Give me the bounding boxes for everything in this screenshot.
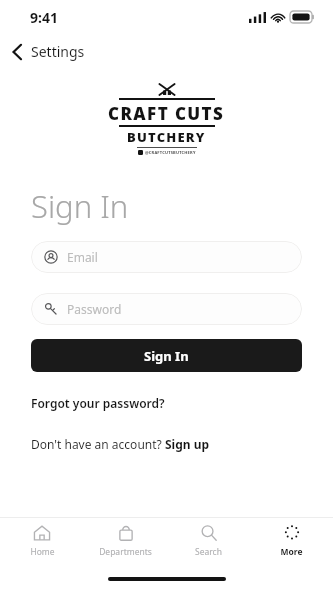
button[interactable]: Back (0, 34, 101, 69)
staticText: Sign In (31, 185, 129, 227)
other: Back (12, 43, 23, 61)
staticText: Sign In (144, 347, 189, 365)
button[interactable]: Password (31, 293, 302, 325)
staticText: 9:41 (30, 8, 58, 27)
staticText: BUTCHERY (127, 128, 206, 146)
button[interactable]: Search (167, 518, 250, 566)
button[interactable]: Departments (84, 518, 167, 566)
staticText: @CRAFTCUTSBUTCHERY (145, 150, 196, 155)
staticText: Departments (99, 546, 152, 558)
button[interactable]: Forgot your password? (31, 395, 165, 411)
button[interactable]: Home (0, 518, 84, 566)
staticText: Email (67, 249, 98, 265)
button[interactable]: Sign In (31, 339, 302, 372)
staticText: Home (30, 546, 55, 558)
button[interactable]: Sign up (165, 436, 210, 452)
staticText: Don't have an account? (31, 436, 165, 452)
staticText: Search (195, 546, 222, 558)
staticText: Settings (31, 42, 85, 61)
staticText: More (280, 546, 303, 558)
staticText: CRAFT CUTS (108, 102, 225, 125)
button[interactable]: More (250, 518, 333, 566)
staticText: Password (67, 301, 122, 317)
button[interactable]: Email (31, 241, 302, 273)
